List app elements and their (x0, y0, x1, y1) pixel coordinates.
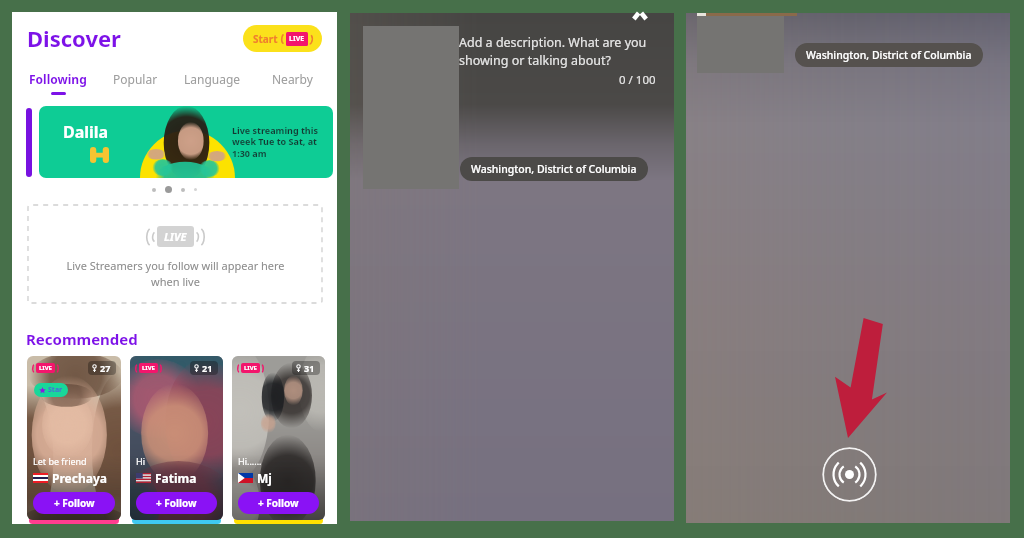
staticText: Star (48, 385, 63, 395)
button[interactable]: + Follow (238, 492, 319, 514)
button[interactable]: LIVE (130, 356, 223, 524)
staticText: + Follow (54, 496, 95, 510)
staticText: Hi...... (238, 455, 262, 467)
staticText: + Follow (156, 496, 197, 510)
staticText: Washington, District of Columbia (471, 162, 637, 176)
staticText: LIVE (289, 34, 305, 44)
staticText: 27 (100, 362, 111, 374)
staticText: + Follow (258, 496, 299, 510)
staticText: 21 (202, 362, 213, 374)
staticText: Prechaya (52, 470, 107, 486)
button[interactable]: Dalila (39, 106, 333, 178)
button[interactable]: Nearby (253, 69, 331, 94)
button[interactable]: + Follow (33, 492, 115, 514)
staticText: Mj (257, 470, 272, 486)
staticText: LIVE (164, 229, 187, 244)
button[interactable]: Close (629, 13, 651, 19)
staticText: Hi (136, 455, 145, 467)
button[interactable]: + Follow (136, 492, 217, 514)
button[interactable]: Start (243, 25, 322, 52)
staticText: Discover (27, 23, 121, 53)
button[interactable]: Following (18, 69, 98, 97)
staticText: LIVE (244, 364, 257, 372)
staticText: LIVE (39, 364, 52, 372)
staticText: Language (184, 71, 241, 87)
staticText: Live Streamers you follow will appear he… (66, 258, 285, 289)
staticText: Following (29, 71, 87, 87)
staticText: LIVE (142, 364, 155, 372)
button[interactable]: Popular (98, 69, 172, 94)
button[interactable]: LIVE (27, 356, 121, 524)
button[interactable]: Washington, District of Columbia (460, 157, 648, 181)
staticText: Live streaming this week Tue to Sat, at … (232, 124, 318, 160)
button[interactable]: LIVE (232, 356, 325, 524)
staticText: Popular (113, 71, 158, 87)
button[interactable]: Washington, District of Columbia (795, 43, 983, 67)
staticText: 0 / 100 (619, 72, 656, 88)
staticText: Nearby (272, 71, 313, 87)
staticText: Add a description. What are you showing … (459, 34, 664, 69)
staticText: Dalila (63, 121, 109, 143)
button[interactable]: Language (172, 69, 253, 94)
staticText: 31 (304, 362, 315, 374)
staticText: Let be friend (33, 455, 87, 467)
staticText: Washington, District of Columbia (806, 48, 972, 62)
staticText: Start (253, 32, 278, 46)
staticText: Recommended (26, 329, 138, 349)
button[interactable]: Go live (822, 447, 877, 502)
staticText: Fatima (155, 470, 197, 486)
